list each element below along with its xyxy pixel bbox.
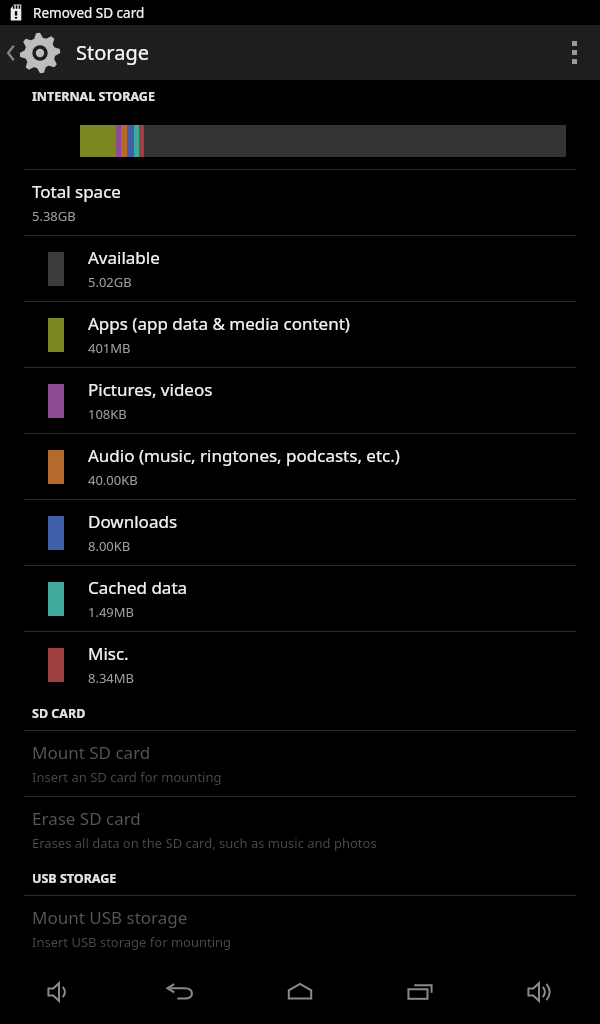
staticText: Downloads xyxy=(88,510,178,533)
button[interactable]: Home xyxy=(240,960,360,1024)
staticText: INTERNAL STORAGE xyxy=(32,88,155,105)
staticText: 5.38GB xyxy=(32,207,76,225)
button[interactable]: Misc. xyxy=(0,632,600,697)
button[interactable]: Pictures, videos xyxy=(0,368,600,433)
staticText: Misc. xyxy=(88,642,129,665)
staticText: Apps (app data & media content) xyxy=(88,312,350,335)
staticText: Erases all data on the SD card, such as … xyxy=(32,834,377,852)
staticText: 5.02GB xyxy=(88,273,132,291)
staticText: Mount USB storage xyxy=(32,906,188,929)
button[interactable]: Navigate up xyxy=(0,25,68,80)
staticText: Total space xyxy=(32,180,121,203)
staticText: Insert an SD card for mounting xyxy=(32,768,222,786)
staticText: Pictures, videos xyxy=(88,378,213,401)
button[interactable]: Downloads xyxy=(0,500,600,565)
staticText: Audio (music, ringtones, podcasts, etc.) xyxy=(88,444,400,467)
staticText: Available xyxy=(88,246,160,269)
staticText: 401MB xyxy=(88,339,131,357)
staticText: Insert USB storage for mounting xyxy=(32,933,232,951)
staticText: USB STORAGE xyxy=(32,870,117,887)
button[interactable]: More options xyxy=(548,25,600,80)
button[interactable]: Recent apps xyxy=(360,960,480,1024)
button[interactable]: Available xyxy=(0,236,600,301)
staticText: 8.34MB xyxy=(88,669,135,687)
staticText: 8.00KB xyxy=(88,537,131,555)
staticText: Mount SD card xyxy=(32,741,151,764)
staticText: Removed SD card xyxy=(33,4,145,22)
staticText: SD CARD xyxy=(32,705,86,722)
staticText: 40.00KB xyxy=(88,471,138,489)
staticText: Cached data xyxy=(88,576,188,599)
button[interactable]: Volume down xyxy=(0,960,120,1024)
button[interactable]: Apps (app data & media content) xyxy=(0,302,600,367)
button[interactable]: Total space xyxy=(0,170,600,235)
staticText: 108KB xyxy=(88,405,127,423)
button[interactable]: Volume up xyxy=(480,960,600,1024)
staticText: 1.49MB xyxy=(88,603,135,621)
button[interactable]: Cached data xyxy=(0,566,600,631)
staticText: Erase SD card xyxy=(32,807,141,830)
button[interactable]: Audio (music, ringtones, podcasts, etc.) xyxy=(0,434,600,499)
staticText: Storage xyxy=(76,39,149,66)
button[interactable]: Back xyxy=(120,960,240,1024)
button[interactable]: Erase SD card xyxy=(0,797,600,862)
button[interactable]: Mount SD card xyxy=(0,731,600,796)
button[interactable]: Mount USB storage xyxy=(0,896,600,960)
